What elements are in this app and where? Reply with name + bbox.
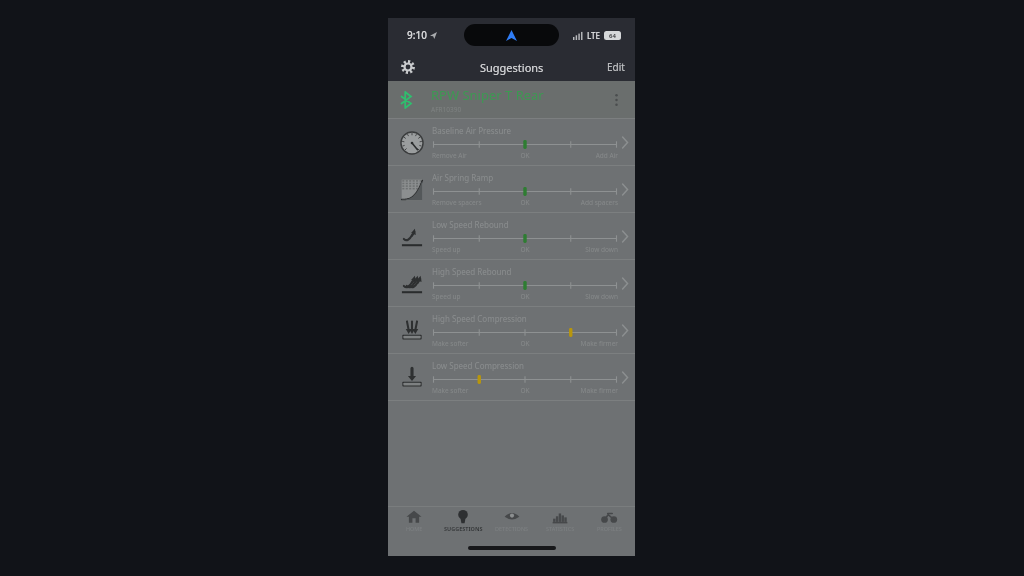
staticText: AFR10390 bbox=[431, 105, 462, 114]
staticText: Edit bbox=[607, 60, 625, 74]
staticText: Remove Air bbox=[432, 151, 494, 160]
staticText: 64 bbox=[609, 32, 616, 40]
staticText: Baseline Air Pressure bbox=[432, 125, 512, 136]
staticText: Add Air bbox=[556, 151, 618, 160]
button[interactable]: Low Speed Rebound bbox=[388, 213, 635, 260]
staticText: Low Speed Rebound bbox=[432, 219, 509, 230]
button[interactable]: DETECTIONS bbox=[489, 509, 535, 542]
staticText: 9:10 bbox=[407, 28, 427, 42]
staticText: Slow down bbox=[556, 245, 618, 254]
button[interactable]: Baseline Air Pressure bbox=[388, 119, 635, 166]
button[interactable]: PROFILES bbox=[586, 509, 632, 542]
button[interactable]: SUGGESTIONS bbox=[440, 509, 486, 542]
staticText: RPW Sniper T Rear bbox=[431, 86, 544, 104]
staticText: Make firmer bbox=[556, 386, 618, 395]
button[interactable]: Air Spring Ramp bbox=[388, 166, 635, 213]
staticText: High Speed Rebound bbox=[432, 266, 512, 277]
staticText: Slow down bbox=[556, 292, 618, 301]
staticText: Remove spacers bbox=[432, 198, 494, 207]
staticText: Make softer bbox=[432, 339, 494, 348]
staticText: Air Spring Ramp bbox=[432, 172, 494, 183]
staticText: Speed up bbox=[432, 245, 494, 254]
staticText: Speed up bbox=[432, 292, 494, 301]
staticText: STATISTICS bbox=[546, 525, 575, 532]
staticText: Make softer bbox=[432, 386, 494, 395]
staticText: LTE bbox=[587, 30, 601, 41]
staticText: Low Speed Compression bbox=[432, 360, 525, 371]
button[interactable]: Edit bbox=[605, 56, 627, 78]
staticText: PROFILES bbox=[597, 525, 622, 532]
button[interactable]: Settings bbox=[396, 55, 420, 79]
staticText: Make firmer bbox=[556, 339, 618, 348]
staticText: Add spacers bbox=[556, 198, 618, 207]
button[interactable]: High Speed Rebound bbox=[388, 260, 635, 307]
staticText: SUGGESTIONS bbox=[444, 525, 483, 532]
staticText: High Speed Compression bbox=[432, 313, 527, 324]
button[interactable]: High Speed Compression bbox=[388, 307, 635, 354]
staticText: Suggestions bbox=[480, 60, 544, 75]
staticText: HOME bbox=[406, 525, 423, 532]
button[interactable]: More options bbox=[606, 90, 626, 110]
button[interactable]: STATISTICS bbox=[537, 509, 583, 542]
staticText: DETECTIONS bbox=[495, 525, 529, 532]
button[interactable]: HOME bbox=[391, 509, 437, 542]
button[interactable]: Low Speed Compression bbox=[388, 354, 635, 401]
button[interactable]: RPW Sniper T Rear bbox=[388, 81, 635, 119]
